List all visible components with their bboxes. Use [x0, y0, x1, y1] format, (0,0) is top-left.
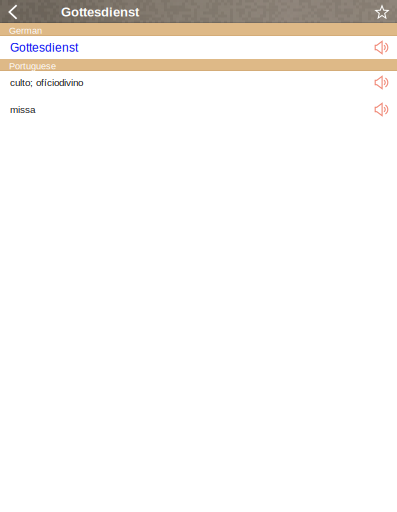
staticText: German [9, 25, 42, 36]
staticText: culto; ofíciodivino [10, 77, 83, 88]
button[interactable]: culto; ofíciodivino [0, 71, 397, 94]
staticText: missa [10, 104, 35, 115]
button[interactable]: missa [0, 94, 397, 125]
button[interactable]: Add to favorites [369, 0, 397, 23]
button[interactable]: Gottesdienst [0, 36, 397, 59]
button[interactable]: Back [0, 0, 26, 23]
staticText: Portuguese [9, 61, 56, 71]
staticText: Gottesdienst [10, 41, 78, 54]
staticText: Gottesdienst [61, 5, 139, 19]
